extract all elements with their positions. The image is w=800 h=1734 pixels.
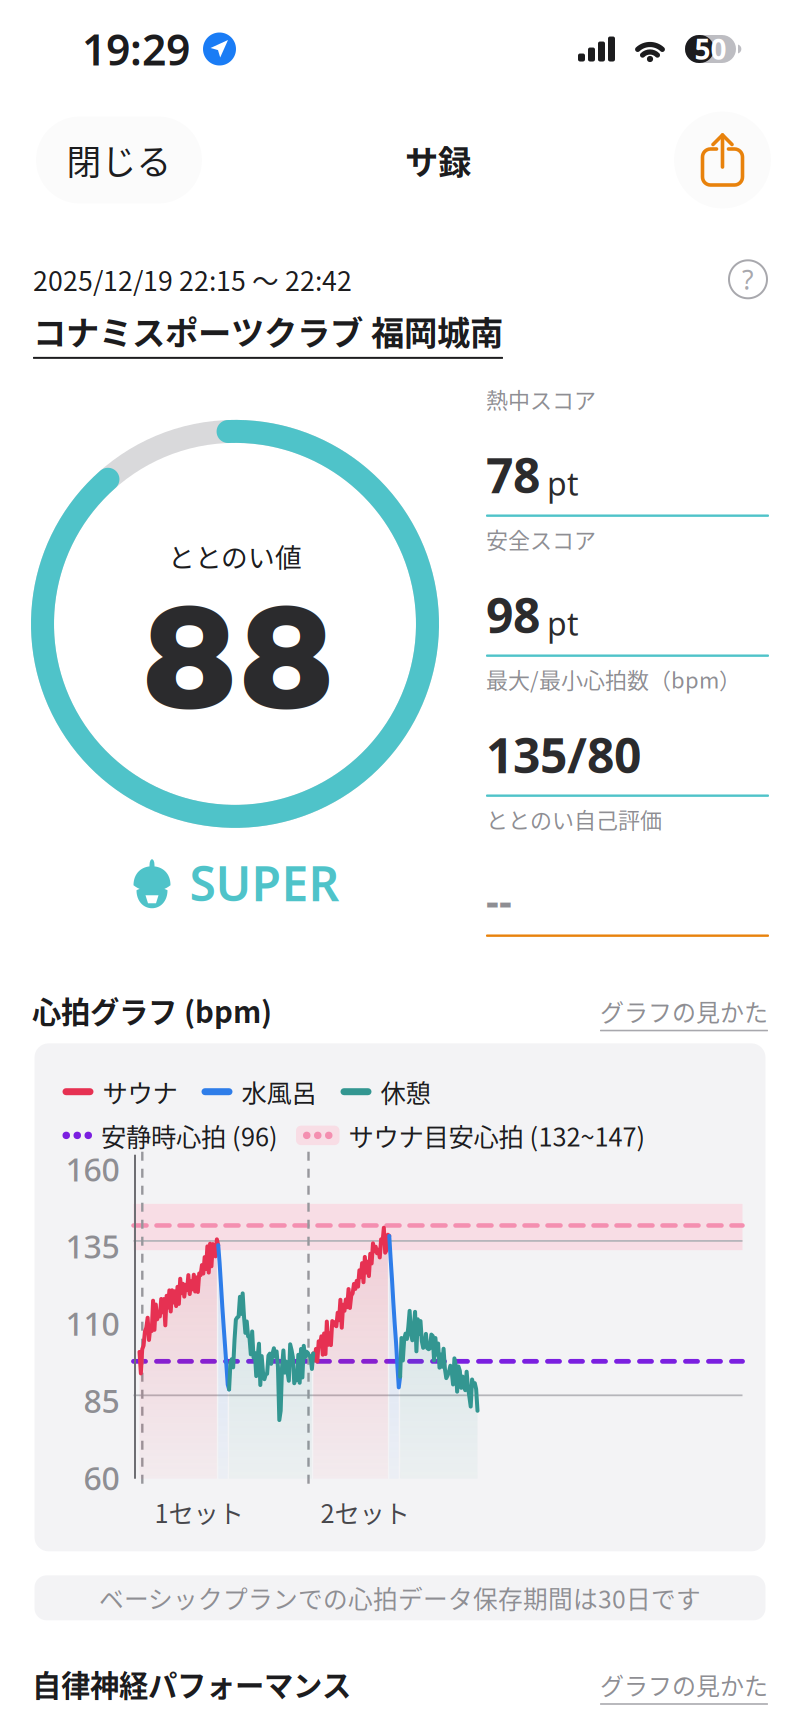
staticText: 60 bbox=[83, 1456, 119, 1499]
staticText: 安全スコア bbox=[486, 523, 596, 555]
staticText: 最大/最小心拍数（bpm） bbox=[486, 663, 741, 695]
staticText: 160 bbox=[65, 1148, 119, 1190]
staticText: 心拍グラフ (bpm) bbox=[32, 989, 272, 1031]
staticText: グラフの見かた bbox=[600, 994, 768, 1028]
staticText: 19:29 bbox=[82, 21, 190, 77]
button[interactable]: Help bbox=[729, 260, 767, 298]
staticText: 閉じる bbox=[66, 135, 171, 185]
staticText: 78 bbox=[486, 443, 540, 506]
staticText: ととのい値 bbox=[168, 537, 302, 575]
staticText: 2セット bbox=[320, 1494, 409, 1530]
staticText: コナミスポーツクラブ 福岡城南 bbox=[33, 307, 503, 355]
button[interactable]: 閉じる bbox=[36, 116, 202, 203]
staticText: サウナ bbox=[102, 1073, 177, 1110]
button[interactable]: Share bbox=[674, 111, 771, 208]
staticText: 安静時心拍 (96) bbox=[101, 1117, 278, 1154]
staticText: pt bbox=[547, 602, 579, 644]
staticText: 85 bbox=[83, 1379, 119, 1422]
staticText: ベーシックプランでの心拍データ保存期間は30日です bbox=[99, 1580, 701, 1616]
button[interactable]: グラフの見かた bbox=[600, 994, 768, 1031]
staticText: グラフの見かた bbox=[600, 1667, 768, 1702]
staticText: サウナ目安心拍 (132~147) bbox=[348, 1117, 645, 1154]
staticText: 135/80 bbox=[486, 723, 641, 786]
staticText: 熱中スコア bbox=[486, 383, 596, 415]
staticText: pt bbox=[547, 462, 579, 504]
button[interactable]: グラフの見かた bbox=[600, 1667, 768, 1705]
staticText: サ録 bbox=[405, 136, 471, 184]
staticText: 135 bbox=[65, 1225, 119, 1267]
staticText: 1セット bbox=[154, 1494, 243, 1530]
staticText: 水風呂 bbox=[241, 1073, 316, 1110]
staticText: 98 bbox=[486, 583, 540, 646]
staticText: 50 bbox=[694, 30, 726, 68]
staticText: -- bbox=[486, 873, 512, 926]
staticText: 110 bbox=[65, 1302, 119, 1345]
staticText: 2025/12/19 22:15 〜 22:42 bbox=[33, 260, 352, 299]
staticText: SUPER bbox=[189, 851, 339, 915]
staticText: 自律神経パフォーマンス bbox=[32, 1662, 351, 1705]
staticText: 88 bbox=[141, 580, 335, 738]
staticText: ととのい自己評価 bbox=[486, 803, 662, 835]
staticText: ? bbox=[742, 262, 754, 297]
staticText: 休憩 bbox=[380, 1073, 430, 1110]
